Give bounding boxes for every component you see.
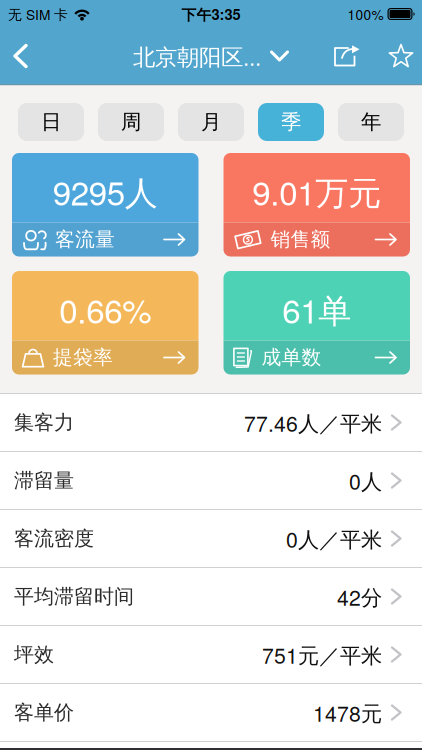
staticText: 成单数 [261,345,321,370]
staticText: 42分 [337,581,382,612]
staticText: 平均滞留时间 [14,584,134,609]
staticText: 月 [201,109,221,135]
button[interactable]: 北京朝阳区... [133,40,289,72]
staticText: 周 [121,109,141,135]
staticText: 集客力 [14,410,74,435]
button[interactable]: 客流密度 [0,510,422,567]
staticText: 1478元 [313,697,382,728]
button[interactable]: 平均滞留时间 [0,568,422,625]
staticText: 日 [41,109,61,135]
staticText: 销售额 [270,227,330,252]
staticText: 客流密度 [14,526,94,551]
button[interactable]: 滞留量 [0,452,422,509]
button[interactable]: 9295人 [12,153,198,256]
button[interactable]: 日 [18,103,84,141]
staticText: 客单价 [14,700,74,725]
staticText: 9295人 [53,168,158,215]
staticText: 77.46人／平米 [244,407,382,438]
button[interactable]: 客单价 [0,684,422,741]
staticText: 下午3:35 [181,3,240,24]
staticText: 无 SIM 卡 [8,4,68,24]
staticText: 北京朝阳区... [133,40,261,72]
button[interactable]: 月 [178,103,244,141]
button[interactable]: 61单 [223,271,410,374]
staticText: 751元／平米 [262,639,382,670]
staticText: 0人／平米 [286,523,382,554]
button[interactable]: 集客力 [0,394,422,451]
button[interactable]: 分享 [324,28,369,83]
staticText: 100% [347,4,383,24]
button[interactable]: 年 [338,103,404,141]
staticText: 坪效 [14,642,54,667]
button[interactable]: 收藏 [369,28,422,83]
button[interactable]: 季 [258,103,324,141]
staticText: 年 [361,109,381,135]
button[interactable]: 0.66% [12,271,198,374]
staticText: 0.66% [59,286,151,333]
button[interactable]: 坪效 [0,626,422,683]
staticText: 0人 [349,465,382,496]
staticText: 提袋率 [53,345,113,370]
button[interactable]: 周 [98,103,164,141]
staticText: 季 [281,109,301,135]
button[interactable]: 9.01万元 [223,153,410,256]
button[interactable]: 返回 [0,28,29,83]
staticText: 61单 [282,286,351,333]
staticText: 9.01万元 [252,168,381,215]
staticText: 滞留量 [14,468,74,493]
staticText: 客流量 [55,227,115,252]
